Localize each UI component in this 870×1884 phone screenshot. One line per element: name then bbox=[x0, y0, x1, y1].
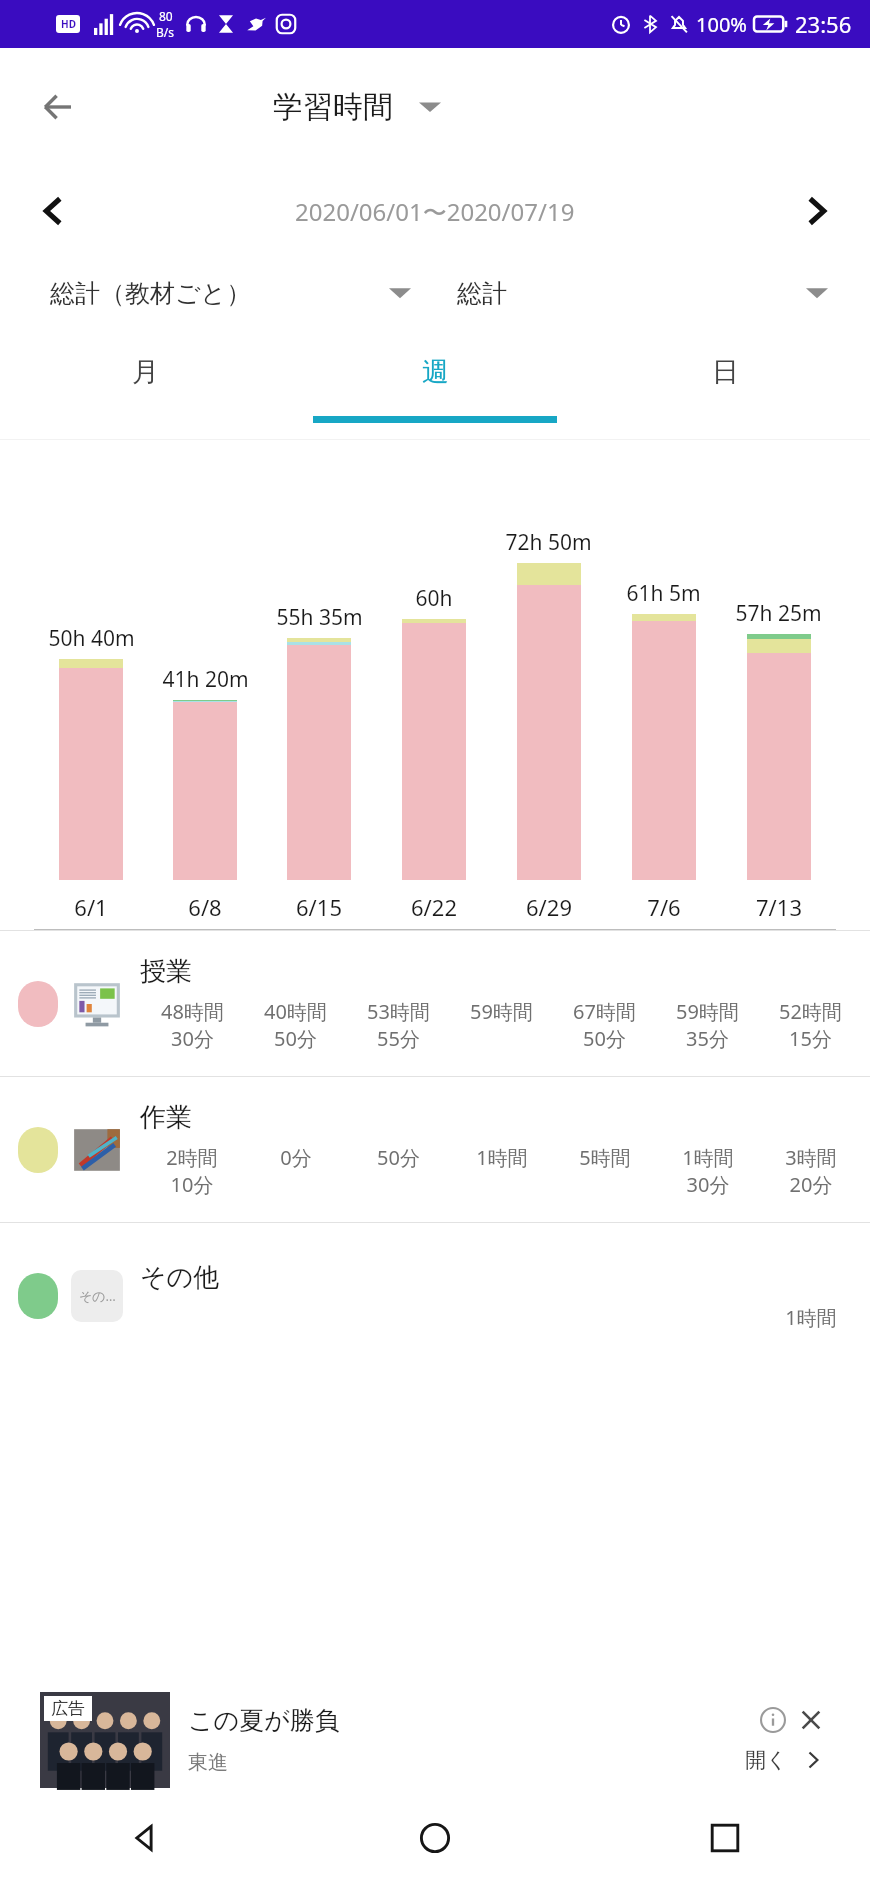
staticText: その… bbox=[79, 1287, 116, 1305]
button[interactable]: Close ad bbox=[798, 1707, 824, 1733]
staticText: 6/29 bbox=[526, 892, 572, 922]
button[interactable]: 学習時間 bbox=[265, 82, 449, 132]
button[interactable]: 月 bbox=[0, 329, 290, 439]
staticText: 週 bbox=[422, 355, 449, 389]
staticText: 72h 50m bbox=[505, 528, 592, 557]
staticText: 東進 bbox=[188, 1750, 228, 1775]
button[interactable]: Recents bbox=[580, 1792, 870, 1884]
staticText: 5時間 bbox=[579, 1144, 631, 1171]
button[interactable]: 週 bbox=[290, 329, 580, 439]
staticText: 広告 bbox=[51, 1698, 85, 1719]
other: Ad info bbox=[760, 1707, 786, 1733]
staticText: この夏が勝負 bbox=[188, 1705, 340, 1736]
staticText: 53時間 55分 bbox=[367, 998, 430, 1052]
staticText: 学習時間 bbox=[273, 88, 393, 126]
staticText: 59時間 bbox=[470, 998, 533, 1025]
staticText: 6/22 bbox=[411, 892, 457, 922]
staticText: 開く bbox=[745, 1747, 788, 1773]
button[interactable]: Back bbox=[30, 78, 88, 136]
staticText: 41h 20m bbox=[162, 665, 249, 694]
staticText: 1時間 bbox=[476, 1144, 528, 1171]
button[interactable]: 総計 bbox=[435, 257, 870, 329]
staticText: B/s bbox=[156, 24, 175, 40]
staticText: 月 bbox=[132, 355, 159, 389]
staticText: HD bbox=[61, 17, 76, 31]
button[interactable]: その… bbox=[0, 1223, 870, 1368]
button[interactable]: 日 bbox=[580, 329, 870, 439]
staticText: 67時間 50分 bbox=[573, 998, 636, 1052]
staticText: 23:56 bbox=[795, 9, 852, 39]
button[interactable]: Back bbox=[0, 1792, 290, 1884]
staticText: 7/6 bbox=[647, 892, 681, 922]
staticText: 80 bbox=[159, 8, 173, 24]
staticText: 52時間 15分 bbox=[779, 998, 842, 1052]
staticText: 6/8 bbox=[188, 892, 222, 922]
staticText: 55h 35m bbox=[276, 603, 363, 632]
staticText: 100% bbox=[696, 11, 747, 38]
button[interactable]: Next period bbox=[786, 180, 848, 242]
staticText: その他 bbox=[140, 1261, 220, 1294]
staticText: 50h 40m bbox=[48, 624, 135, 653]
staticText: 50分 bbox=[377, 1144, 420, 1171]
staticText: 1時間 30分 bbox=[682, 1144, 734, 1198]
staticText: 61h 5m bbox=[626, 579, 701, 608]
staticText: 40時間 50分 bbox=[264, 998, 327, 1052]
staticText: 2時間 10分 bbox=[166, 1144, 218, 1198]
staticText: 6/1 bbox=[74, 892, 108, 922]
staticText: 作業 bbox=[140, 1101, 192, 1134]
button[interactable]: 広告 bbox=[40, 1688, 830, 1792]
staticText: 57h 25m bbox=[735, 599, 822, 628]
staticText: 総計（教材ごと） bbox=[50, 278, 252, 309]
staticText: 2020/06/01〜2020/07/19 bbox=[295, 195, 575, 228]
staticText: 3時間 20分 bbox=[785, 1144, 837, 1198]
button[interactable]: 総計（教材ごと） bbox=[0, 257, 435, 329]
staticText: 0分 bbox=[280, 1144, 312, 1171]
staticText: 7/13 bbox=[756, 892, 802, 922]
staticText: 60h bbox=[415, 584, 453, 613]
button[interactable]: Home bbox=[290, 1792, 580, 1884]
button[interactable]: 作業 bbox=[0, 1077, 870, 1222]
staticText: 総計 bbox=[457, 278, 507, 309]
staticText: 授業 bbox=[140, 955, 192, 988]
staticText: 59時間 35分 bbox=[676, 998, 739, 1052]
staticText: 日 bbox=[712, 355, 739, 389]
staticText: 48時間 30分 bbox=[161, 998, 224, 1052]
button[interactable]: 授業 bbox=[0, 931, 870, 1076]
staticText: 6/15 bbox=[296, 892, 342, 922]
button[interactable]: Previous period bbox=[22, 180, 84, 242]
staticText: 1時間 bbox=[785, 1304, 837, 1331]
